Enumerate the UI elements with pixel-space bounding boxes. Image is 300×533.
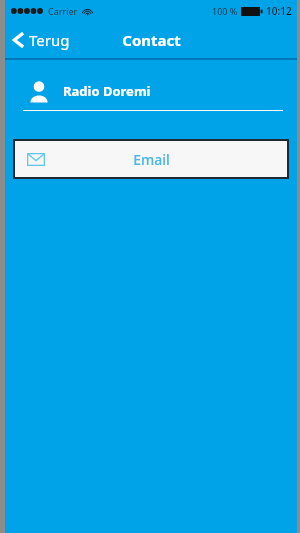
staticText: 10:12 — [266, 4, 292, 18]
other: Email — [27, 153, 45, 166]
button[interactable]: Terug — [5, 26, 80, 54]
staticText: Terug — [29, 30, 70, 50]
staticText: Radio Doremi — [63, 82, 151, 100]
staticText: Carrier — [48, 5, 78, 17]
button[interactable]: Email — [13, 139, 289, 179]
button[interactable]: Radio Doremi — [5, 72, 297, 111]
staticText: Email — [133, 150, 170, 169]
staticText: 100 % — [212, 5, 238, 17]
staticText: Contact — [122, 30, 181, 50]
